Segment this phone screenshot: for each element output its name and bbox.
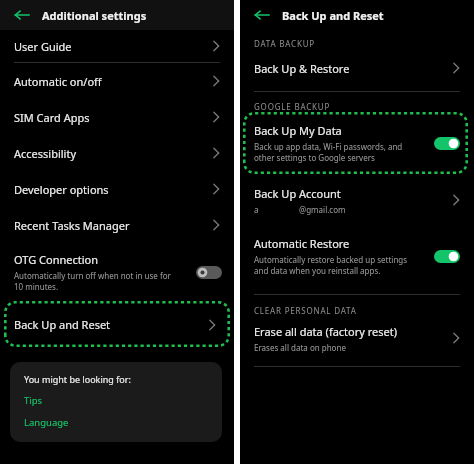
button[interactable]: SIM Card Apps	[0, 99, 234, 135]
staticText: Automatically turn off when not in use f…	[14, 270, 171, 292]
button[interactable]: Toggle on	[434, 250, 460, 263]
staticText: CLEAR PERSONAL DATA	[254, 305, 357, 316]
button[interactable]: Back Up & Restore	[240, 51, 474, 85]
staticText: Erases all data on phone	[254, 342, 346, 353]
button[interactable]: Accessibility	[0, 135, 234, 171]
staticText: Accessibility	[14, 146, 210, 161]
staticText: Automatic on/off	[14, 74, 210, 89]
staticText: Automatic Restore	[254, 236, 350, 251]
button[interactable]: Back Up and Reset	[0, 301, 234, 348]
staticText: Back up app data, Wi-Fi passwords, and o…	[254, 141, 403, 163]
staticText: Additional settings	[42, 8, 147, 23]
button[interactable]: Back Up Account	[240, 180, 474, 220]
button[interactable]: Back	[12, 5, 32, 25]
staticText: Back Up and Reset	[282, 8, 384, 23]
staticText: OTG Connection	[14, 252, 98, 267]
staticText: @gmail.com	[299, 204, 346, 215]
staticText: DATA BACKUP	[254, 38, 315, 49]
button[interactable]: Automatic on/off	[0, 63, 234, 99]
staticText: Back Up My Data	[254, 123, 342, 138]
button[interactable]: Language	[24, 416, 69, 429]
staticText: a	[254, 204, 259, 215]
button[interactable]: Developer options	[0, 171, 234, 207]
button[interactable]: Automatic Restore	[240, 230, 474, 282]
button[interactable]: Tips	[24, 394, 43, 407]
button[interactable]: OTG Connection	[0, 243, 234, 301]
button[interactable]: Back Up My Data	[240, 112, 474, 174]
button[interactable]: Toggle on	[434, 137, 460, 150]
button[interactable]: Toggle off	[196, 266, 222, 279]
staticText: Developer options	[14, 182, 210, 197]
staticText: Back Up and Reset	[14, 317, 206, 332]
staticText: Erase all data (factory reset)	[254, 324, 398, 339]
button[interactable]: Recent Tasks Manager	[0, 207, 234, 243]
staticText: User Guide	[14, 39, 210, 54]
staticText: Back Up & Restore	[254, 61, 450, 76]
staticText: You might be looking for:	[24, 373, 131, 385]
staticText: SIM Card Apps	[14, 110, 210, 125]
button[interactable]: User Guide	[0, 30, 234, 62]
staticText: Automatically restore backed up settings…	[254, 254, 408, 276]
staticText: Back Up Account	[254, 186, 341, 201]
staticText: Recent Tasks Manager	[14, 218, 210, 233]
staticText: GOOGLE BACKUP	[254, 101, 331, 112]
button[interactable]: Back	[252, 5, 272, 25]
button[interactable]: Erase all data (factory reset)	[240, 316, 474, 360]
